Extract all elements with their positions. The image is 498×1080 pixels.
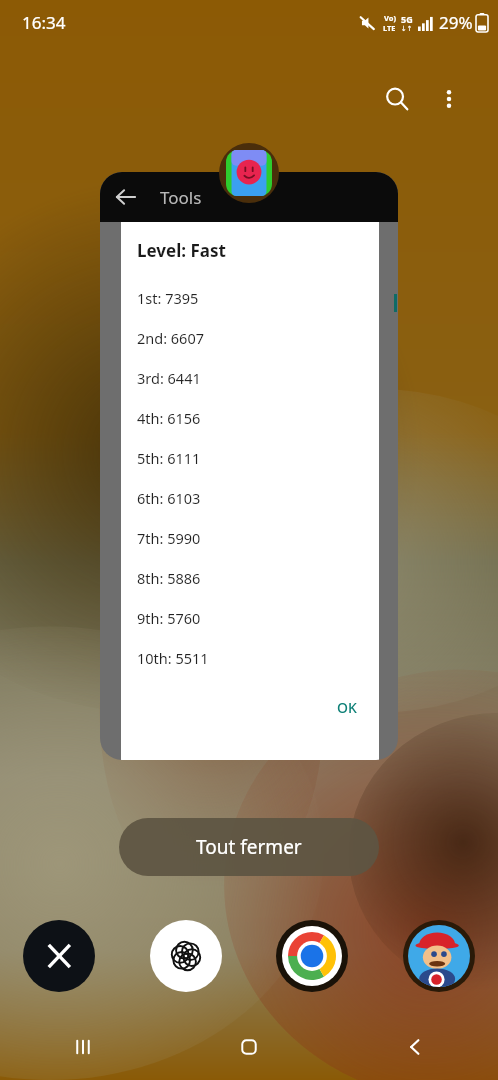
staticText: 29% — [439, 11, 473, 34]
staticText: 5th: 6111 — [137, 448, 201, 468]
staticText: Tout fermer — [196, 834, 302, 860]
button[interactable]: Home — [221, 1019, 277, 1075]
staticText: ↓↑ — [401, 25, 413, 33]
staticText: OK — [337, 698, 357, 717]
staticText: 2nd: 6607 — [137, 328, 205, 348]
button[interactable]: X — [20, 917, 98, 995]
button[interactable]: Chrome — [273, 917, 351, 995]
button[interactable]: Back — [387, 1019, 443, 1075]
staticText: 3rd: 6441 — [137, 368, 201, 388]
staticText: 1st: 7395 — [137, 288, 199, 308]
staticText: Level: Fast — [137, 239, 226, 262]
button[interactable]: ChatGPT — [147, 917, 225, 995]
staticText: 7th: 5990 — [137, 528, 201, 548]
button[interactable]: Tools — [100, 172, 398, 760]
staticText: 9th: 5760 — [137, 608, 201, 628]
button[interactable]: Tout fermer — [119, 818, 379, 876]
staticText: 16:34 — [22, 11, 66, 34]
staticText: 8th: 5886 — [137, 568, 201, 588]
staticText: 10th: 5511 — [137, 648, 209, 668]
button[interactable]: OK — [327, 692, 367, 723]
staticText: 5G — [401, 13, 413, 25]
staticText: 6th: 6103 — [137, 488, 201, 508]
button[interactable]: More options — [426, 76, 472, 122]
staticText: LTE — [383, 23, 396, 33]
button[interactable]: Mario Kart — [400, 917, 478, 995]
button[interactable]: Recent apps — [55, 1019, 111, 1075]
staticText: Tools — [160, 186, 202, 209]
staticText: 4th: 6156 — [137, 408, 201, 428]
button[interactable]: Search — [374, 76, 420, 122]
staticText: Vo) — [384, 13, 396, 23]
